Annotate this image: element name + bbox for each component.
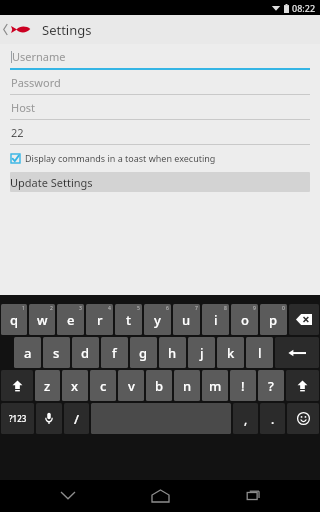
- staticText: b: [155, 377, 164, 395]
- button[interactable]: Settings, navigate up: [0, 15, 320, 44]
- button[interactable]: !: [230, 370, 256, 401]
- staticText: f: [112, 344, 117, 362]
- staticText: g: [139, 344, 148, 362]
- button[interactable]: t: [115, 304, 142, 335]
- button[interactable]: x: [62, 370, 88, 401]
- button[interactable]: y: [144, 304, 171, 335]
- button[interactable]: Host: [0, 95, 320, 120]
- staticText: s: [53, 344, 60, 362]
- button[interactable]: j: [188, 337, 215, 368]
- button[interactable]: k: [217, 337, 244, 368]
- staticText: ,: [244, 411, 248, 427]
- button[interactable]: key: [275, 337, 319, 368]
- button[interactable]: e: [57, 304, 84, 335]
- staticText: 5: [137, 305, 140, 312]
- staticText: m: [209, 377, 222, 395]
- button[interactable]: key: [286, 370, 319, 401]
- staticText: Display commands in a toast when executi…: [25, 152, 216, 164]
- staticText: k: [227, 344, 235, 362]
- button[interactable]: r: [86, 304, 113, 335]
- staticText: ?123: [9, 413, 27, 424]
- button[interactable]: h: [159, 337, 186, 368]
- staticText: 7: [195, 305, 198, 312]
- button[interactable]: Update Settings: [10, 172, 310, 192]
- button[interactable]: q: [1, 304, 27, 335]
- button[interactable]: a: [14, 337, 41, 368]
- staticText: e: [67, 311, 75, 329]
- button[interactable]: Back: [44, 480, 92, 512]
- staticText: l: [258, 344, 262, 362]
- staticText: !: [241, 377, 245, 395]
- button[interactable]: key: [36, 403, 62, 434]
- button[interactable]: b: [146, 370, 172, 401]
- button[interactable]: o: [231, 304, 258, 335]
- staticText: q: [10, 311, 19, 329]
- button[interactable]: p: [260, 304, 287, 335]
- staticText: j: [200, 344, 204, 362]
- button[interactable]: v: [118, 370, 144, 401]
- staticText: 2: [50, 305, 53, 312]
- staticText: ?: [268, 377, 274, 395]
- button[interactable]: key: [287, 403, 319, 434]
- button[interactable]: ?123: [1, 403, 34, 434]
- staticText: a: [24, 344, 32, 362]
- button[interactable]: ,: [233, 403, 258, 434]
- button[interactable]: c: [90, 370, 116, 401]
- button[interactable]: n: [174, 370, 200, 401]
- staticText: Host: [11, 100, 36, 115]
- staticText: 22: [11, 125, 24, 140]
- button[interactable]: Home: [136, 480, 184, 512]
- button[interactable]: f: [101, 337, 128, 368]
- button[interactable]: l: [246, 337, 273, 368]
- staticText: r: [97, 311, 103, 329]
- staticText: 0: [282, 305, 285, 312]
- button[interactable]: 22: [0, 120, 320, 145]
- staticText: n: [183, 377, 192, 395]
- staticText: 4: [108, 305, 111, 312]
- staticText: 1: [22, 305, 25, 312]
- staticText: c: [100, 377, 107, 395]
- staticText: z: [44, 377, 51, 395]
- button[interactable]: .: [260, 403, 285, 434]
- button[interactable]: Recents: [228, 480, 276, 512]
- staticText: Settings: [42, 21, 92, 39]
- staticText: /: [74, 410, 80, 428]
- button[interactable]: Display commands in a toast when executi…: [0, 148, 320, 168]
- staticText: w: [37, 311, 48, 329]
- staticText: p: [269, 311, 278, 329]
- button[interactable]: d: [72, 337, 99, 368]
- button[interactable]: ?: [258, 370, 284, 401]
- button[interactable]: /: [64, 403, 89, 434]
- button[interactable]: Username: [0, 44, 320, 70]
- staticText: u: [182, 311, 191, 329]
- staticText: t: [126, 311, 131, 329]
- staticText: Username: [12, 49, 66, 64]
- staticText: 8: [224, 305, 227, 312]
- staticText: v: [128, 377, 135, 395]
- button[interactable]: i: [202, 304, 229, 335]
- staticText: d: [81, 344, 90, 362]
- staticText: 6: [166, 305, 169, 312]
- button[interactable]: u: [173, 304, 200, 335]
- button[interactable]: m: [202, 370, 228, 401]
- staticText: Password: [11, 75, 61, 90]
- button[interactable]: Password: [0, 70, 320, 95]
- button[interactable]: g: [130, 337, 157, 368]
- staticText: y: [154, 311, 161, 329]
- staticText: i: [214, 311, 218, 329]
- staticText: 3: [79, 305, 82, 312]
- button[interactable]: key: [1, 370, 33, 401]
- staticText: x: [71, 377, 79, 395]
- staticText: o: [241, 311, 249, 329]
- staticText: h: [168, 344, 177, 362]
- button[interactable]: key: [289, 304, 319, 335]
- button[interactable]: z: [35, 370, 60, 401]
- button[interactable]: w: [29, 304, 55, 335]
- staticText: .: [271, 411, 275, 427]
- button[interactable]: s: [43, 337, 70, 368]
- staticText: 9: [253, 305, 256, 312]
- staticText: 08:22: [292, 2, 316, 14]
- staticText: Update Settings: [10, 175, 310, 190]
